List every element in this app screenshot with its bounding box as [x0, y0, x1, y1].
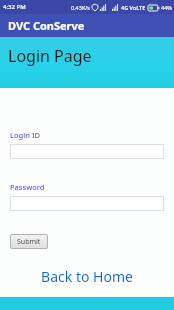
- staticText: 0.43K/s: [71, 4, 90, 11]
- button[interactable]: [10, 144, 164, 159]
- staticText: 4G VoLTE: [121, 4, 146, 11]
- staticText: Login ID: [10, 130, 41, 140]
- button[interactable]: [10, 196, 164, 211]
- staticText: Login Page: [8, 45, 92, 67]
- staticText: 4:32 PM: [3, 3, 26, 11]
- staticText: DVC ConServe: [8, 18, 85, 33]
- staticText: 44%: [161, 4, 172, 11]
- button[interactable]: Back to Home: [0, 265, 174, 287]
- staticText: Back to Home: [41, 267, 133, 286]
- staticText: Submit: [17, 237, 41, 247]
- staticText: Password: [10, 182, 45, 192]
- button[interactable]: Submit: [10, 234, 48, 249]
